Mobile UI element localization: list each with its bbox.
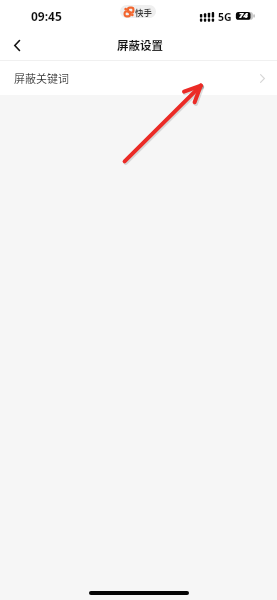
staticText: 5G [218, 10, 232, 24]
button[interactable]: Back [5, 33, 29, 57]
button[interactable]: 屏蔽关键词 [0, 61, 277, 95]
staticText: 屏蔽设置 [117, 37, 163, 54]
staticText: 屏蔽关键词 [14, 70, 69, 86]
staticText: 74 [239, 10, 248, 19]
staticText: 快手 [135, 6, 153, 18]
staticText: 09:45 [31, 8, 62, 24]
